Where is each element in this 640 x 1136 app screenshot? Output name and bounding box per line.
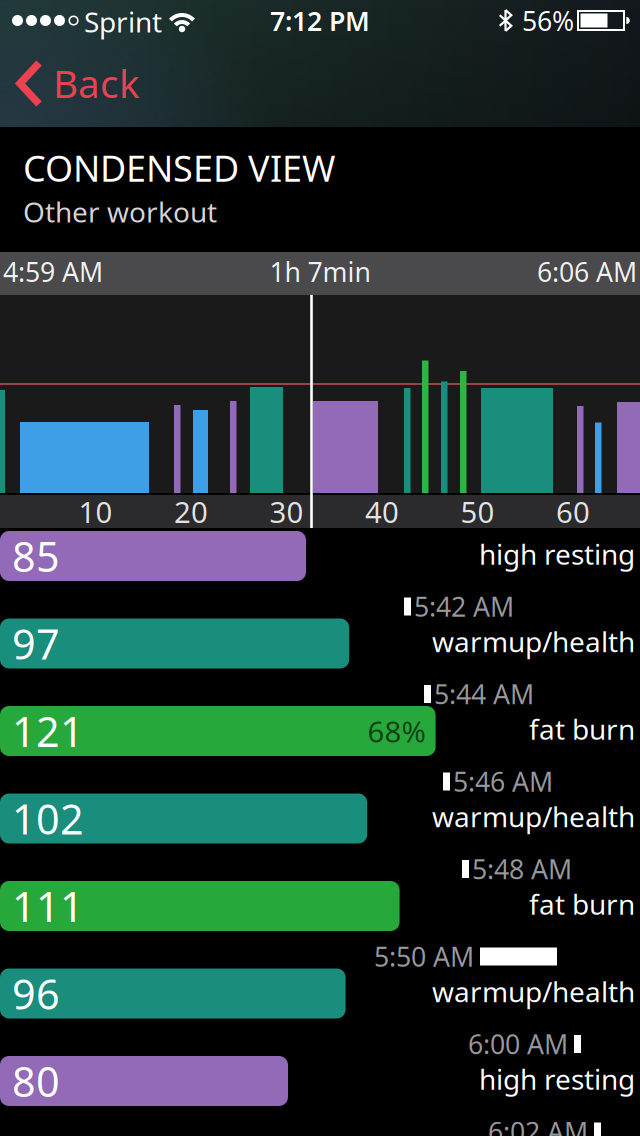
staticText: 6:02 AM (488, 1114, 588, 1136)
staticText: 50 (460, 492, 494, 531)
staticText: 6:00 AM (468, 1026, 568, 1062)
staticText: 60 (556, 492, 590, 531)
staticText: 5:46 AM (453, 764, 553, 799)
staticText: CONDENSED VIEW (23, 144, 335, 192)
staticText: 5:48 AM (472, 851, 572, 887)
staticText: warmup/health (432, 798, 635, 835)
staticText: 102 (12, 791, 84, 846)
staticText: 56% (522, 3, 574, 38)
staticText: 97 (12, 616, 60, 671)
staticText: 111 (12, 879, 84, 933)
staticText: 1h 7min (269, 254, 370, 289)
staticText: 80 (12, 1054, 60, 1108)
staticText: Back (53, 57, 140, 109)
staticText: high resting (479, 1060, 635, 1098)
staticText: 6:06 AM (537, 254, 637, 289)
staticText: warmup/health (432, 623, 635, 660)
staticText: 5:44 AM (434, 676, 534, 712)
staticText: 5:42 AM (414, 589, 514, 624)
staticText: Other workout (23, 193, 217, 230)
staticText: 85 (12, 529, 60, 583)
staticText: 7:12 PM (270, 3, 370, 38)
staticText: 10 (78, 492, 112, 531)
staticText: Sprint (84, 3, 162, 40)
staticText: 68% (368, 711, 426, 750)
staticText: 121 (12, 704, 84, 758)
staticText: 4:59 AM (3, 254, 103, 289)
staticText: 96 (12, 966, 60, 1021)
staticText: 5:50 AM (374, 939, 474, 974)
staticText: high resting (479, 535, 635, 573)
staticText: fat burn (529, 710, 635, 748)
button[interactable]: Back (16, 61, 140, 105)
staticText: 40 (365, 492, 399, 531)
staticText: 20 (174, 492, 208, 531)
staticText: fat burn (529, 885, 635, 923)
staticText: 30 (269, 492, 303, 531)
staticText: warmup/health (432, 973, 635, 1010)
